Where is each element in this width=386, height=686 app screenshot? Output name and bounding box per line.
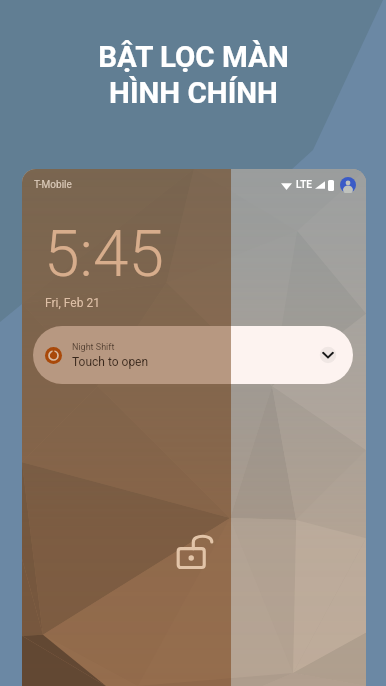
staticText: T-Mobile: [34, 179, 72, 191]
button[interactable]: Unlock: [174, 531, 216, 573]
staticText: LTE: [296, 179, 312, 191]
staticText: Night Shift: [72, 342, 115, 353]
button[interactable]: Account: [340, 177, 356, 193]
staticText: Touch to open: [72, 355, 149, 369]
staticText: 5:45: [44, 217, 164, 292]
staticText: Fri, Feb 21: [45, 296, 100, 310]
button[interactable]: Night Shift: [33, 326, 353, 384]
staticText: BẬT LỌC MÀN HÌNH CHÍNH: [98, 40, 289, 110]
